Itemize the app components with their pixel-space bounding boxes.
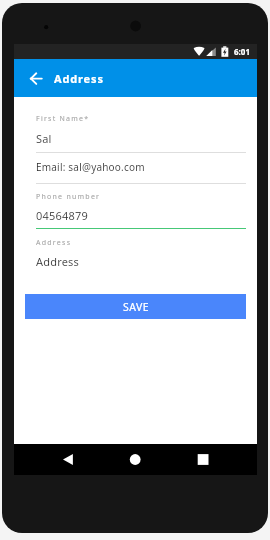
staticText: SAVE [123,300,149,314]
staticText: 04564879 [36,208,88,223]
staticText: Email: sal@yahoo.com [36,160,145,174]
staticText: Phone number [36,192,101,202]
staticText: Address [54,71,104,86]
button[interactable]: Back [14,59,60,97]
staticText: Sal [36,131,52,146]
staticText: Address [36,254,80,269]
button[interactable]: SAVE [25,294,246,319]
staticText: 6:01 [234,46,250,57]
staticText: Address [36,238,72,248]
staticText: First Name* [36,114,90,124]
